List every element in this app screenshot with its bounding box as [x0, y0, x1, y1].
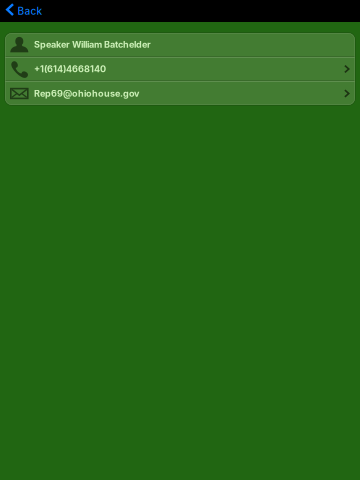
staticText: Speaker William Batchelder: [34, 39, 151, 50]
staticText: +1(614)4668140: [34, 63, 106, 74]
staticText: Rep69@ohiohouse.gov: [34, 88, 139, 99]
staticText: Back: [18, 5, 43, 17]
button[interactable]: Back: [0, 0, 51, 22]
button[interactable]: Speaker William Batchelder: [5, 33, 355, 56]
button[interactable]: Rep69@ohiohouse.gov: [5, 82, 355, 105]
button[interactable]: +1(614)4668140: [5, 58, 355, 80]
